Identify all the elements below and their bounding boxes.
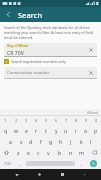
button[interactable]: o — [81, 125, 91, 136]
button[interactable]: h — [56, 136, 66, 147]
button[interactable]: Hide keyboard — [78, 169, 90, 180]
button[interactable]: i — [71, 125, 81, 136]
button[interactable]: j — [66, 136, 76, 147]
button[interactable]: q — [0, 125, 11, 136]
staticText: 1 — [4, 118, 7, 123]
button[interactable]: m — [76, 147, 87, 158]
staticText: GBoard — [87, 111, 98, 115]
button[interactable]: Reg. of Wheel — [4, 43, 97, 56]
button[interactable]: 6 — [51, 116, 61, 125]
button[interactable]: g — [46, 136, 56, 147]
staticText: w — [14, 127, 19, 134]
staticText: 4 — [35, 118, 38, 123]
staticText: 5 — [45, 118, 48, 123]
button[interactable]: Backspace — [87, 147, 101, 158]
button[interactable]: 0 — [91, 116, 101, 125]
button[interactable]: p — [91, 125, 101, 136]
staticText: n — [69, 149, 73, 156]
button[interactable]: k — [76, 136, 86, 147]
button[interactable]: d — [26, 136, 36, 147]
staticText: o — [84, 127, 88, 134]
button[interactable]: Back — [3, 9, 14, 20]
staticText: t — [45, 127, 47, 134]
button[interactable]: 1 — [0, 116, 11, 125]
button[interactable]: . — [76, 159, 86, 168]
staticText: 2 — [15, 118, 18, 123]
staticText: v — [47, 149, 50, 156]
staticText: Search registration numbers only — [11, 59, 66, 64]
button[interactable]: 2 — [11, 116, 21, 125]
button[interactable]: 3 — [21, 116, 31, 125]
staticText: z — [17, 149, 20, 156]
staticText: CR 70V — [7, 49, 24, 56]
button[interactable]: 5 — [41, 116, 51, 125]
staticText: c — [37, 149, 40, 156]
staticText: 8 — [75, 118, 78, 123]
staticText: 7 — [65, 118, 68, 123]
staticText: . — [80, 161, 82, 167]
button[interactable]: s — [16, 136, 26, 147]
staticText: f — [40, 138, 42, 145]
button[interactable]: 8 — [71, 116, 81, 125]
button[interactable]: v — [43, 147, 54, 158]
button[interactable]: Search registration numbers only — [4, 59, 97, 64]
button[interactable]: , — [15, 159, 25, 168]
button[interactable]: b — [54, 147, 65, 158]
button[interactable]: x — [23, 147, 33, 158]
button[interactable]: Construction number — [4, 67, 97, 78]
staticText: l — [90, 138, 92, 145]
button[interactable]: Shift — [0, 147, 13, 158]
button[interactable]: y — [51, 125, 61, 136]
staticText: x — [27, 149, 30, 156]
button[interactable]: n — [65, 147, 76, 158]
staticText: Search — [18, 10, 43, 20]
button[interactable]: l — [86, 136, 96, 147]
button[interactable]: t — [41, 125, 51, 136]
button[interactable]: f — [36, 136, 46, 147]
button[interactable]: a — [5, 136, 16, 147]
button[interactable]: Symbols — [0, 159, 15, 168]
staticText: m — [79, 149, 84, 156]
staticText: d — [29, 138, 33, 145]
staticText: h — [59, 138, 63, 145]
staticText: p — [94, 127, 98, 134]
staticText: u — [64, 127, 68, 134]
staticText: 9 — [85, 118, 88, 123]
staticText: s — [20, 138, 23, 145]
button[interactable]: u — [61, 125, 71, 136]
button[interactable]: 4 — [31, 116, 41, 125]
button[interactable]: r — [31, 125, 41, 136]
button[interactable]: Recent apps — [56, 169, 68, 180]
staticText: 3 — [25, 118, 28, 123]
button[interactable]: Clear — [86, 45, 95, 54]
staticText: j — [70, 138, 72, 145]
staticText: 6 — [55, 118, 58, 123]
staticText: Search of the Spotting stock database fo… — [4, 25, 97, 40]
staticText: , — [19, 161, 21, 167]
button[interactable]: Search — [90, 160, 97, 167]
staticText: y — [55, 127, 58, 134]
button[interactable]: z — [13, 147, 23, 158]
staticText: Reg. of Wheel — [7, 44, 28, 48]
staticText: Construction number — [7, 70, 50, 76]
button[interactable]: c — [33, 147, 43, 158]
staticText: a — [9, 138, 12, 145]
staticText: e — [25, 127, 28, 134]
staticText: ?123 — [4, 162, 11, 166]
button[interactable]: Back — [11, 169, 23, 180]
button[interactable]: 7 — [61, 116, 71, 125]
staticText: r — [35, 127, 38, 134]
staticText: i — [75, 127, 77, 134]
staticText: b — [58, 149, 62, 156]
staticText: k — [80, 138, 83, 145]
button[interactable]: 9 — [81, 116, 91, 125]
staticText: g — [49, 138, 53, 145]
button[interactable]: w — [11, 125, 21, 136]
button[interactable]: e — [21, 125, 31, 136]
button[interactable]: Home — [33, 169, 45, 180]
button[interactable]: Clear construction number — [86, 68, 95, 77]
staticText: 0 — [95, 118, 98, 123]
staticText: q — [4, 127, 8, 134]
